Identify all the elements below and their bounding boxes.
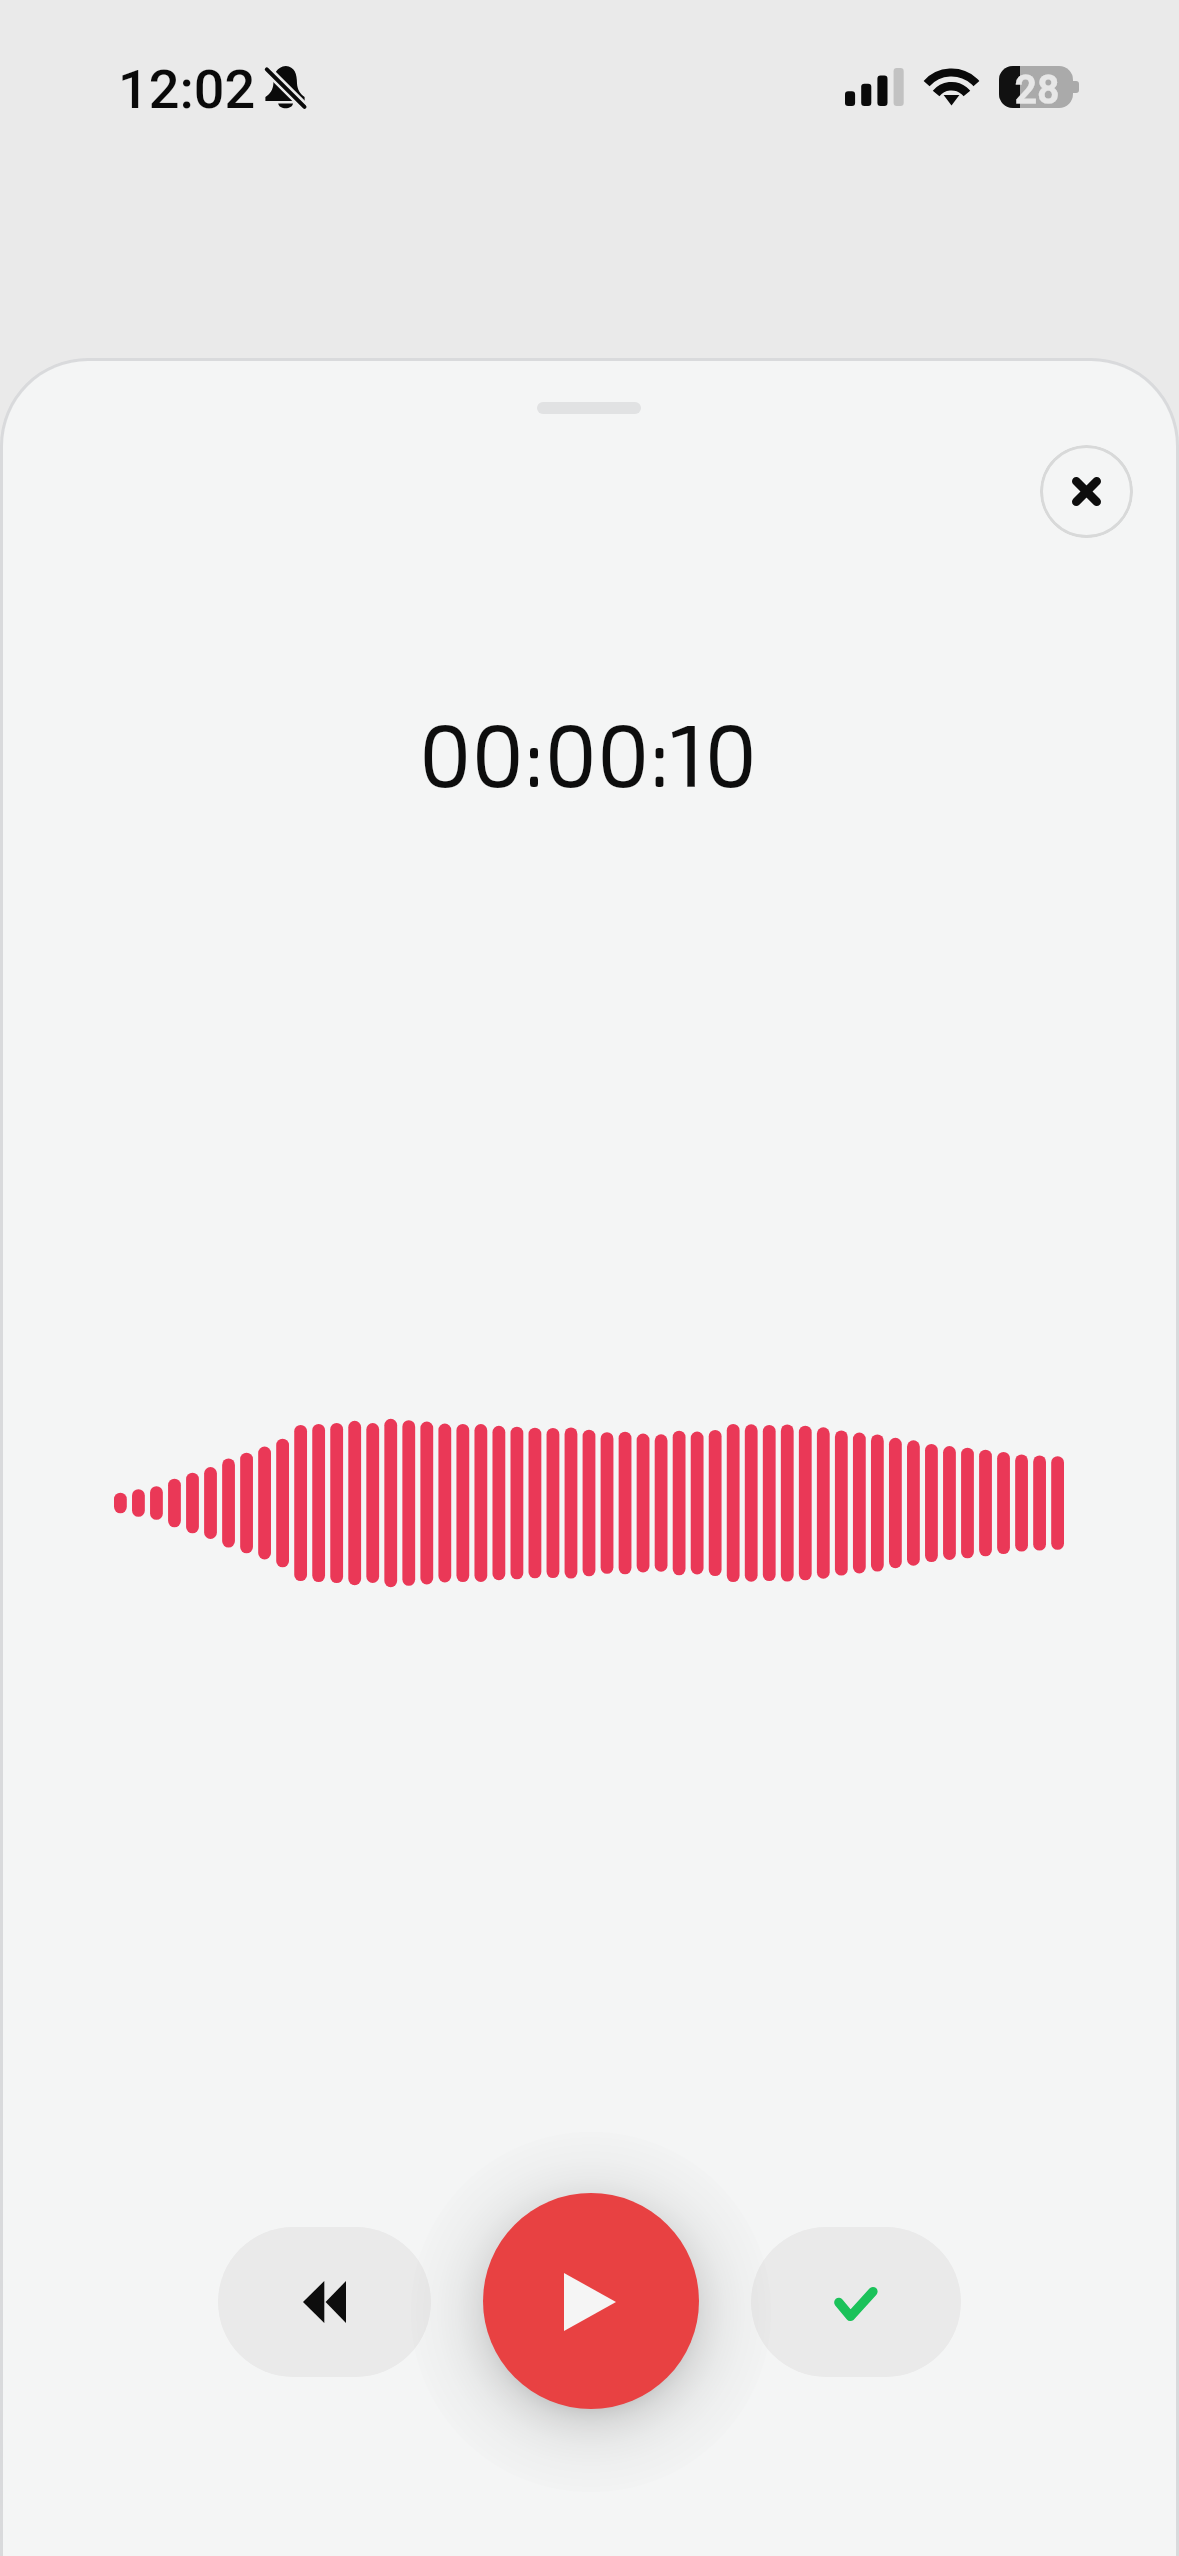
button[interactable]: Close [1040,445,1133,538]
staticText: 00:00:10 [419,700,757,804]
staticText: 28 [1015,68,1061,108]
button[interactable]: Rewind [218,2227,431,2377]
button[interactable]: Done [751,2227,961,2377]
button[interactable]: Play [483,2193,699,2409]
staticText: 12:02 [118,58,256,121]
